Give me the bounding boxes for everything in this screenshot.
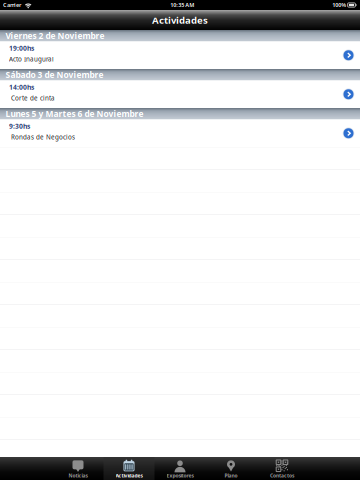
staticText: Viernes 2 de Noviembre — [5, 30, 104, 41]
staticText: Plano — [224, 472, 237, 479]
staticText: 9:30hs — [9, 122, 30, 131]
button[interactable]: Plano — [205, 457, 256, 480]
button[interactable]: Actividades — [103, 457, 154, 480]
staticText: Actividades — [152, 13, 208, 27]
button[interactable]: Contactos — [256, 457, 307, 480]
staticText: Carrier — [3, 1, 21, 9]
staticText: Lunes 5 y Martes 6 de Noviembre — [5, 108, 143, 119]
staticText: Noticias — [68, 472, 87, 479]
staticText: Corte de cinta — [11, 94, 55, 102]
staticText: Actividades — [115, 472, 142, 479]
button[interactable]: 9:30hs — [0, 119, 360, 147]
staticText: 100% — [332, 1, 346, 9]
staticText: Expositores — [166, 472, 193, 479]
staticText: 14:00hs — [9, 83, 34, 92]
staticText: 19:00hs — [9, 44, 34, 53]
button[interactable]: 14:00hs — [0, 80, 360, 108]
staticText: Acto Inaugural — [9, 55, 54, 63]
button[interactable]: 19:00hs — [0, 41, 360, 69]
button[interactable]: Expositores — [154, 457, 205, 480]
staticText: 10:35 AM — [170, 1, 194, 9]
button[interactable]: Noticias — [52, 457, 103, 480]
staticText: Contactos — [270, 472, 294, 479]
staticText: Sábado 3 de Noviembre — [5, 69, 103, 80]
staticText: Rondas de Negocios — [11, 133, 75, 141]
